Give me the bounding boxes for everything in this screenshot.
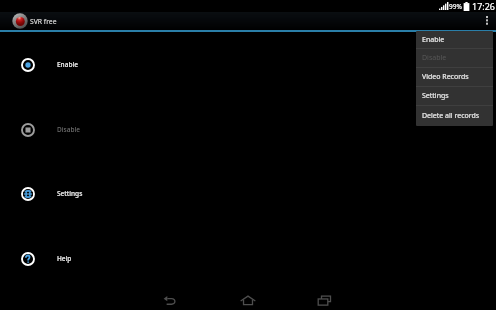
button[interactable]: Enable: [0, 32, 496, 97]
staticText: 17:26: [472, 0, 496, 12]
staticText: Video Records: [422, 72, 469, 82]
button[interactable]: Help: [0, 226, 496, 291]
button[interactable]: Recents: [307, 291, 341, 309]
button[interactable]: Enable: [416, 31, 493, 48]
staticText: Disable: [57, 125, 80, 134]
staticText: SVR free: [30, 17, 57, 26]
button[interactable]: Disable: [0, 97, 496, 162]
staticText: Enable: [57, 60, 78, 69]
staticText: Disable: [422, 53, 447, 63]
button[interactable]: Disable: [416, 49, 493, 67]
staticText: Settings: [57, 189, 83, 198]
staticText: Delete all records: [422, 111, 480, 121]
button[interactable]: Back: [152, 291, 186, 309]
staticText: Enable: [422, 35, 445, 45]
button[interactable]: Settings: [0, 161, 496, 226]
staticText: Help: [57, 254, 72, 263]
button[interactable]: Video Records: [416, 68, 493, 86]
button[interactable]: Settings: [416, 87, 493, 105]
staticText: 99%: [449, 2, 462, 11]
button[interactable]: More options: [478, 12, 496, 30]
button[interactable]: Delete all records: [416, 106, 493, 126]
staticText: Settings: [422, 91, 449, 101]
button[interactable]: Home: [231, 291, 265, 309]
